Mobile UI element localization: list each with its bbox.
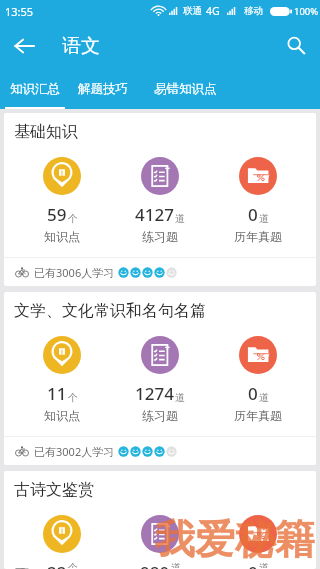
staticText: 0 [248,382,258,405]
staticText: 1274 [135,382,174,405]
button[interactable]: Search [272,23,320,69]
staticText: 道 [175,212,185,225]
staticText: 语文 [62,34,100,58]
staticText: 59 [47,203,67,226]
staticText: 4G [206,4,220,18]
button[interactable]: 基础知识 [4,113,316,286]
staticText: 11 [47,382,67,405]
staticText: 4127 [135,203,174,226]
staticText: 历年真题 [234,229,282,244]
staticText: 基础知识 [14,122,78,142]
staticText: 移动 [244,5,263,17]
staticText: 13:55 [5,4,34,19]
staticText: 练习题 [142,408,178,423]
staticText: 练习题 [142,229,178,244]
button[interactable]: 古诗文鉴赏 [4,471,316,569]
staticText: 历年真题 [234,408,282,423]
staticText: 22 [47,561,67,569]
staticText: 联通 [183,5,202,17]
staticText: 已有3002人学习 [34,444,115,459]
staticText: 0 [248,561,258,569]
staticText: 个 [68,391,78,404]
staticText: 道 [259,561,269,568]
staticText: 知识点 [44,408,80,423]
staticText: 我爱秘籍 [155,514,315,564]
staticText: 知识点 [44,229,80,244]
staticText: 道 [171,561,181,568]
button[interactable]: Back [0,23,48,69]
button[interactable]: 文学、文化常识和名句名篇 [4,292,316,465]
staticText: 易错知识点 [154,81,217,97]
staticText: 980 [140,561,170,569]
staticText: 个 [68,212,78,225]
staticText: 个 [68,561,78,568]
button[interactable]: 解题技巧 [65,70,140,109]
staticText: 100% [294,5,319,18]
staticText: 解题技巧 [78,81,128,97]
staticText: 古诗文鉴赏 [14,480,94,500]
staticText: 道 [175,391,185,404]
staticText: 文学、文化常识和名句名篇 [14,301,206,321]
staticText: 0 [248,203,258,226]
staticText: 道 [259,212,269,225]
staticText: 知识汇总 [10,81,60,97]
button[interactable]: 知识汇总 [5,70,65,109]
staticText: 道 [259,391,269,404]
staticText: 已有3006人学习 [34,265,115,280]
button[interactable]: 易错知识点 [140,70,230,109]
